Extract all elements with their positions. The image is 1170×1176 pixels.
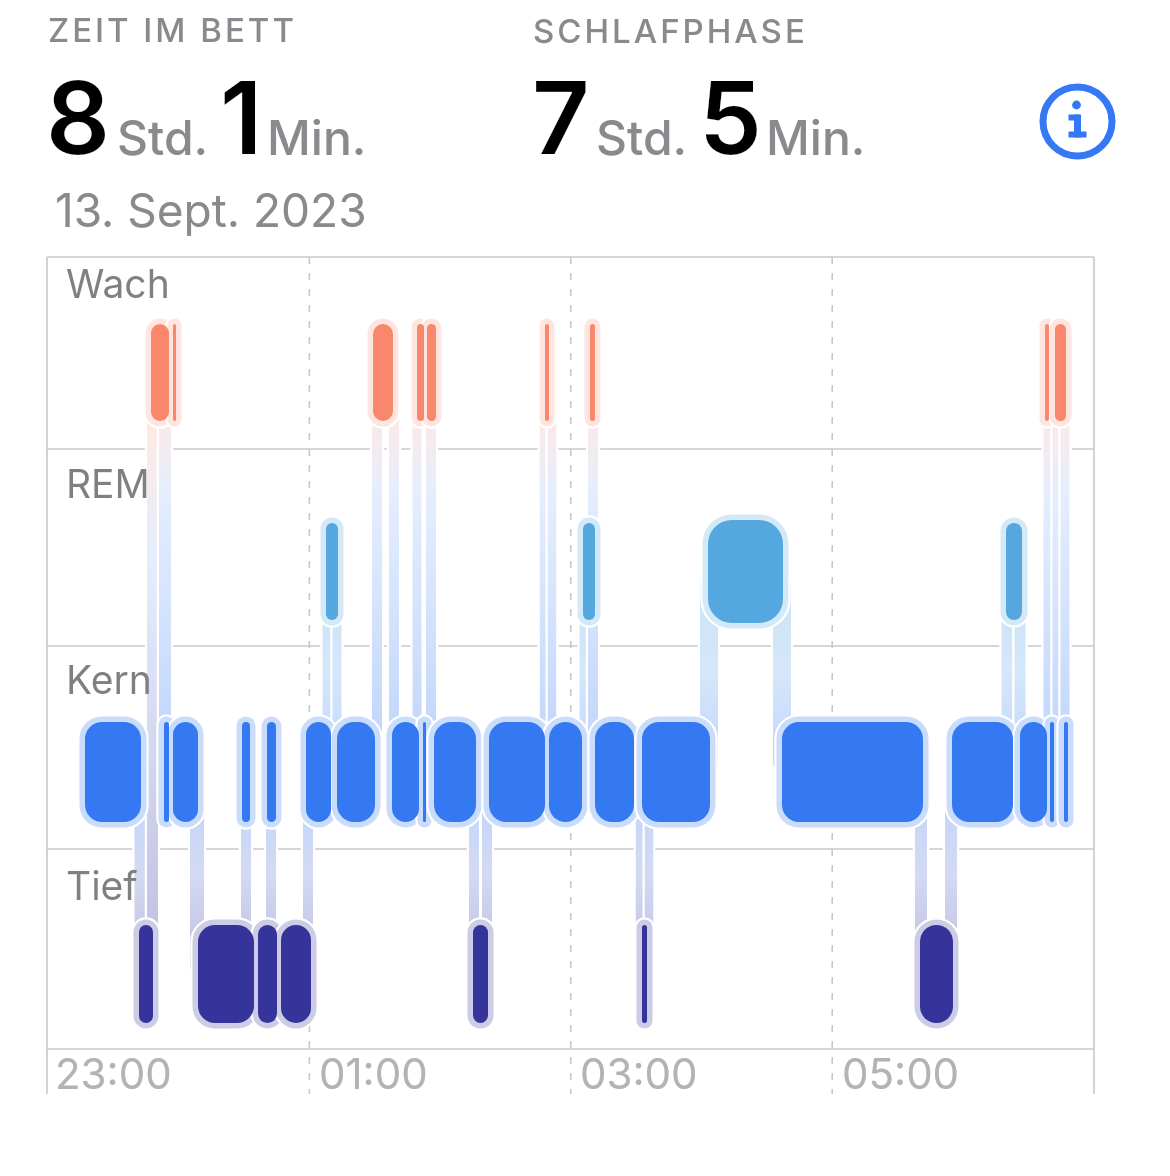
staticText: SCHLAFPHASE [533, 11, 808, 51]
staticText: REM [66, 460, 150, 507]
staticText: Std. [596, 108, 688, 166]
staticText: ZEIT IM BETT [48, 10, 297, 50]
staticText: Tief [66, 862, 138, 909]
staticText: Std. [117, 108, 209, 166]
staticText: 03:00 [580, 1048, 698, 1099]
staticText: Kern [66, 656, 152, 703]
button[interactable] [1039, 83, 1116, 160]
staticText: 13. Sept. 2023 [55, 182, 367, 238]
staticText: 5 [699, 57, 762, 178]
staticText: 23:00 [55, 1048, 172, 1099]
staticText: Wach [66, 260, 170, 307]
staticText: 7 [532, 57, 590, 178]
staticText: Min. [766, 108, 866, 166]
staticText: 8 [46, 57, 111, 178]
staticText: 05:00 [842, 1048, 960, 1099]
staticText: 1 [220, 57, 263, 178]
staticText: Min. [267, 108, 367, 166]
staticText: 01:00 [319, 1048, 428, 1099]
